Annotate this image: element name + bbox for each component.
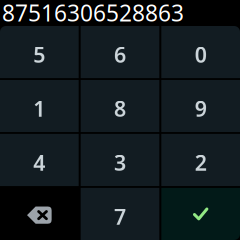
button[interactable]: 6 <box>81 26 159 78</box>
button[interactable]: 7 <box>81 188 159 240</box>
button[interactable]: 2 <box>161 134 240 186</box>
button[interactable]: 9 <box>161 80 240 132</box>
button[interactable]: Delete <box>0 188 79 240</box>
staticText: 4 <box>33 148 45 177</box>
staticText: 7 <box>114 202 126 231</box>
staticText: 8 <box>114 94 126 123</box>
button[interactable]: 8 <box>81 80 159 132</box>
staticText: 0 <box>195 40 207 69</box>
button[interactable]: 3 <box>81 134 159 186</box>
button[interactable]: 0 <box>161 26 240 78</box>
staticText: 87516306528863 <box>2 0 184 28</box>
staticText: 1 <box>33 94 45 123</box>
staticText: 9 <box>195 94 207 123</box>
button[interactable]: 4 <box>0 134 79 186</box>
staticText: 2 <box>195 148 207 177</box>
button[interactable]: 5 <box>0 26 79 78</box>
button[interactable]: 1 <box>0 80 79 132</box>
staticText: 5 <box>33 40 45 69</box>
button[interactable]: Confirm <box>161 188 240 240</box>
staticText: 6 <box>114 40 126 69</box>
staticText: 3 <box>114 148 126 177</box>
